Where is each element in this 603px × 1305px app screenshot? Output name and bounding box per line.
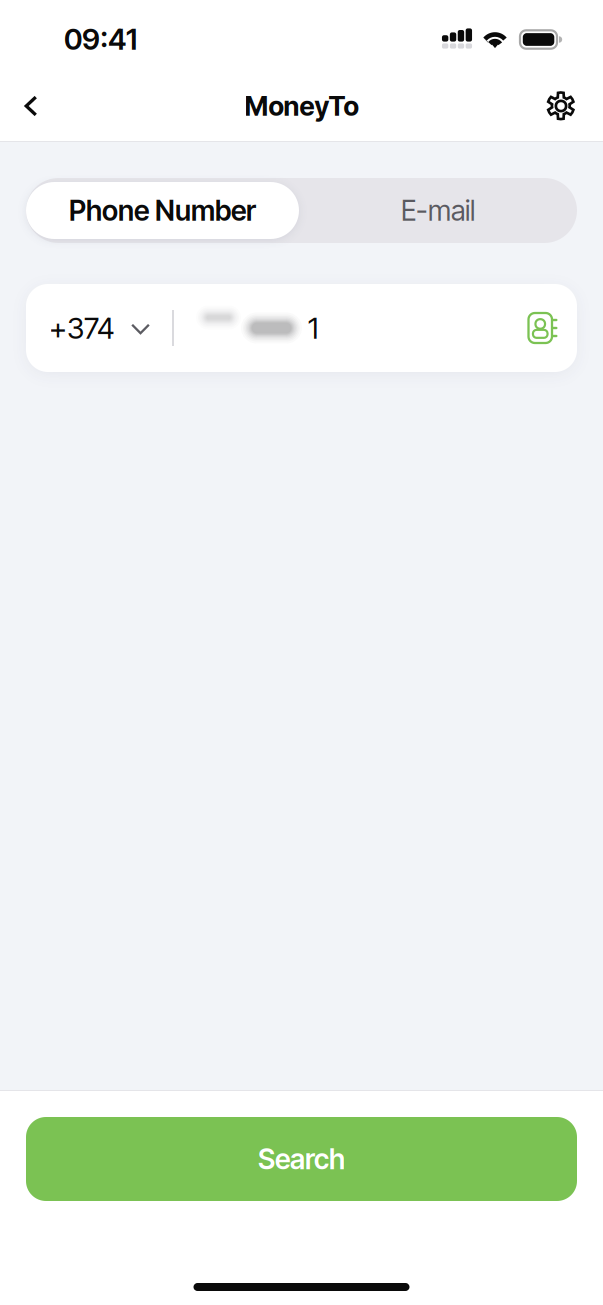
button[interactable]: Settings [534,79,588,133]
staticText: MoneyTo [244,90,358,122]
staticText: Phone Number [69,194,256,227]
button[interactable]: Phone Number [26,182,299,239]
staticText: E-mail [401,194,475,227]
staticText: 09:41 [64,21,137,57]
staticText: Search [258,1142,345,1176]
button[interactable]: Search [26,1117,577,1201]
staticText: 1 [308,310,318,346]
button[interactable]: E-mail [299,182,577,239]
button[interactable]: Choose from contacts [512,297,574,359]
button[interactable]: Back [4,79,58,133]
button[interactable]: +374 [26,284,170,372]
staticText: +374 [49,310,114,346]
